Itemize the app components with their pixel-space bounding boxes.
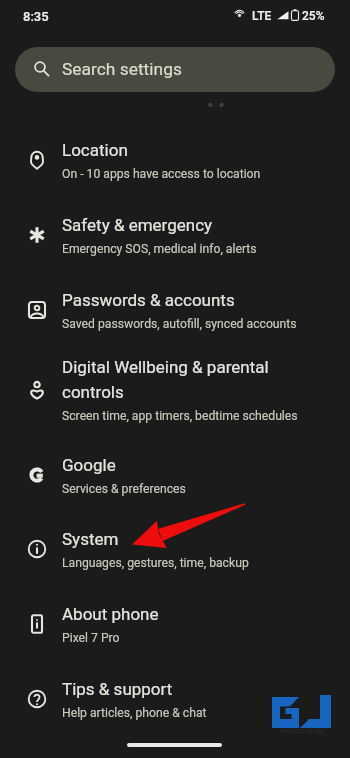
- button[interactable]: About phone: [0, 587, 350, 661]
- staticText: 25%: [302, 9, 325, 23]
- button[interactable]: Digital Wellbeing & parental: [0, 353, 350, 427]
- staticText: 8:35: [23, 9, 49, 24]
- staticText: Screen time, app timers, bedtime schedul…: [62, 409, 298, 423]
- staticText: Search settings: [62, 59, 182, 79]
- staticText: Help articles, phone & chat: [62, 706, 207, 720]
- button[interactable]: Tips & support: [0, 662, 350, 736]
- staticText: LTE: [252, 9, 272, 23]
- staticText: Saved passwords, autofill, synced accoun…: [62, 317, 297, 331]
- staticText: Tips & support: [62, 679, 173, 699]
- staticText: On - 10 apps have access to location: [62, 167, 261, 181]
- staticText: controls: [62, 382, 124, 402]
- staticText: Languages, gestures, time, backup: [62, 556, 249, 570]
- button[interactable]: Safety & emergency: [0, 198, 350, 272]
- staticText: System: [62, 529, 119, 549]
- button[interactable]: System: [0, 512, 350, 586]
- staticText: Safety & emergency: [62, 215, 213, 235]
- button[interactable]: Google: [0, 438, 350, 512]
- staticText: Location: [62, 140, 128, 160]
- button[interactable]: Search settings: [15, 47, 335, 92]
- button[interactable]: Location: [0, 123, 350, 197]
- staticText: Google: [62, 455, 116, 475]
- staticText: About phone: [62, 604, 159, 624]
- staticText: Services & preferences: [62, 482, 186, 496]
- staticText: Emergency SOS, medical info, alerts: [62, 242, 257, 256]
- staticText: GADGETS TO USE: [272, 728, 332, 734]
- staticText: Digital Wellbeing & parental: [62, 357, 269, 377]
- staticText: Pixel 7 Pro: [62, 631, 120, 645]
- button[interactable]: Passwords & accounts: [0, 273, 350, 347]
- staticText: Passwords & accounts: [62, 290, 235, 310]
